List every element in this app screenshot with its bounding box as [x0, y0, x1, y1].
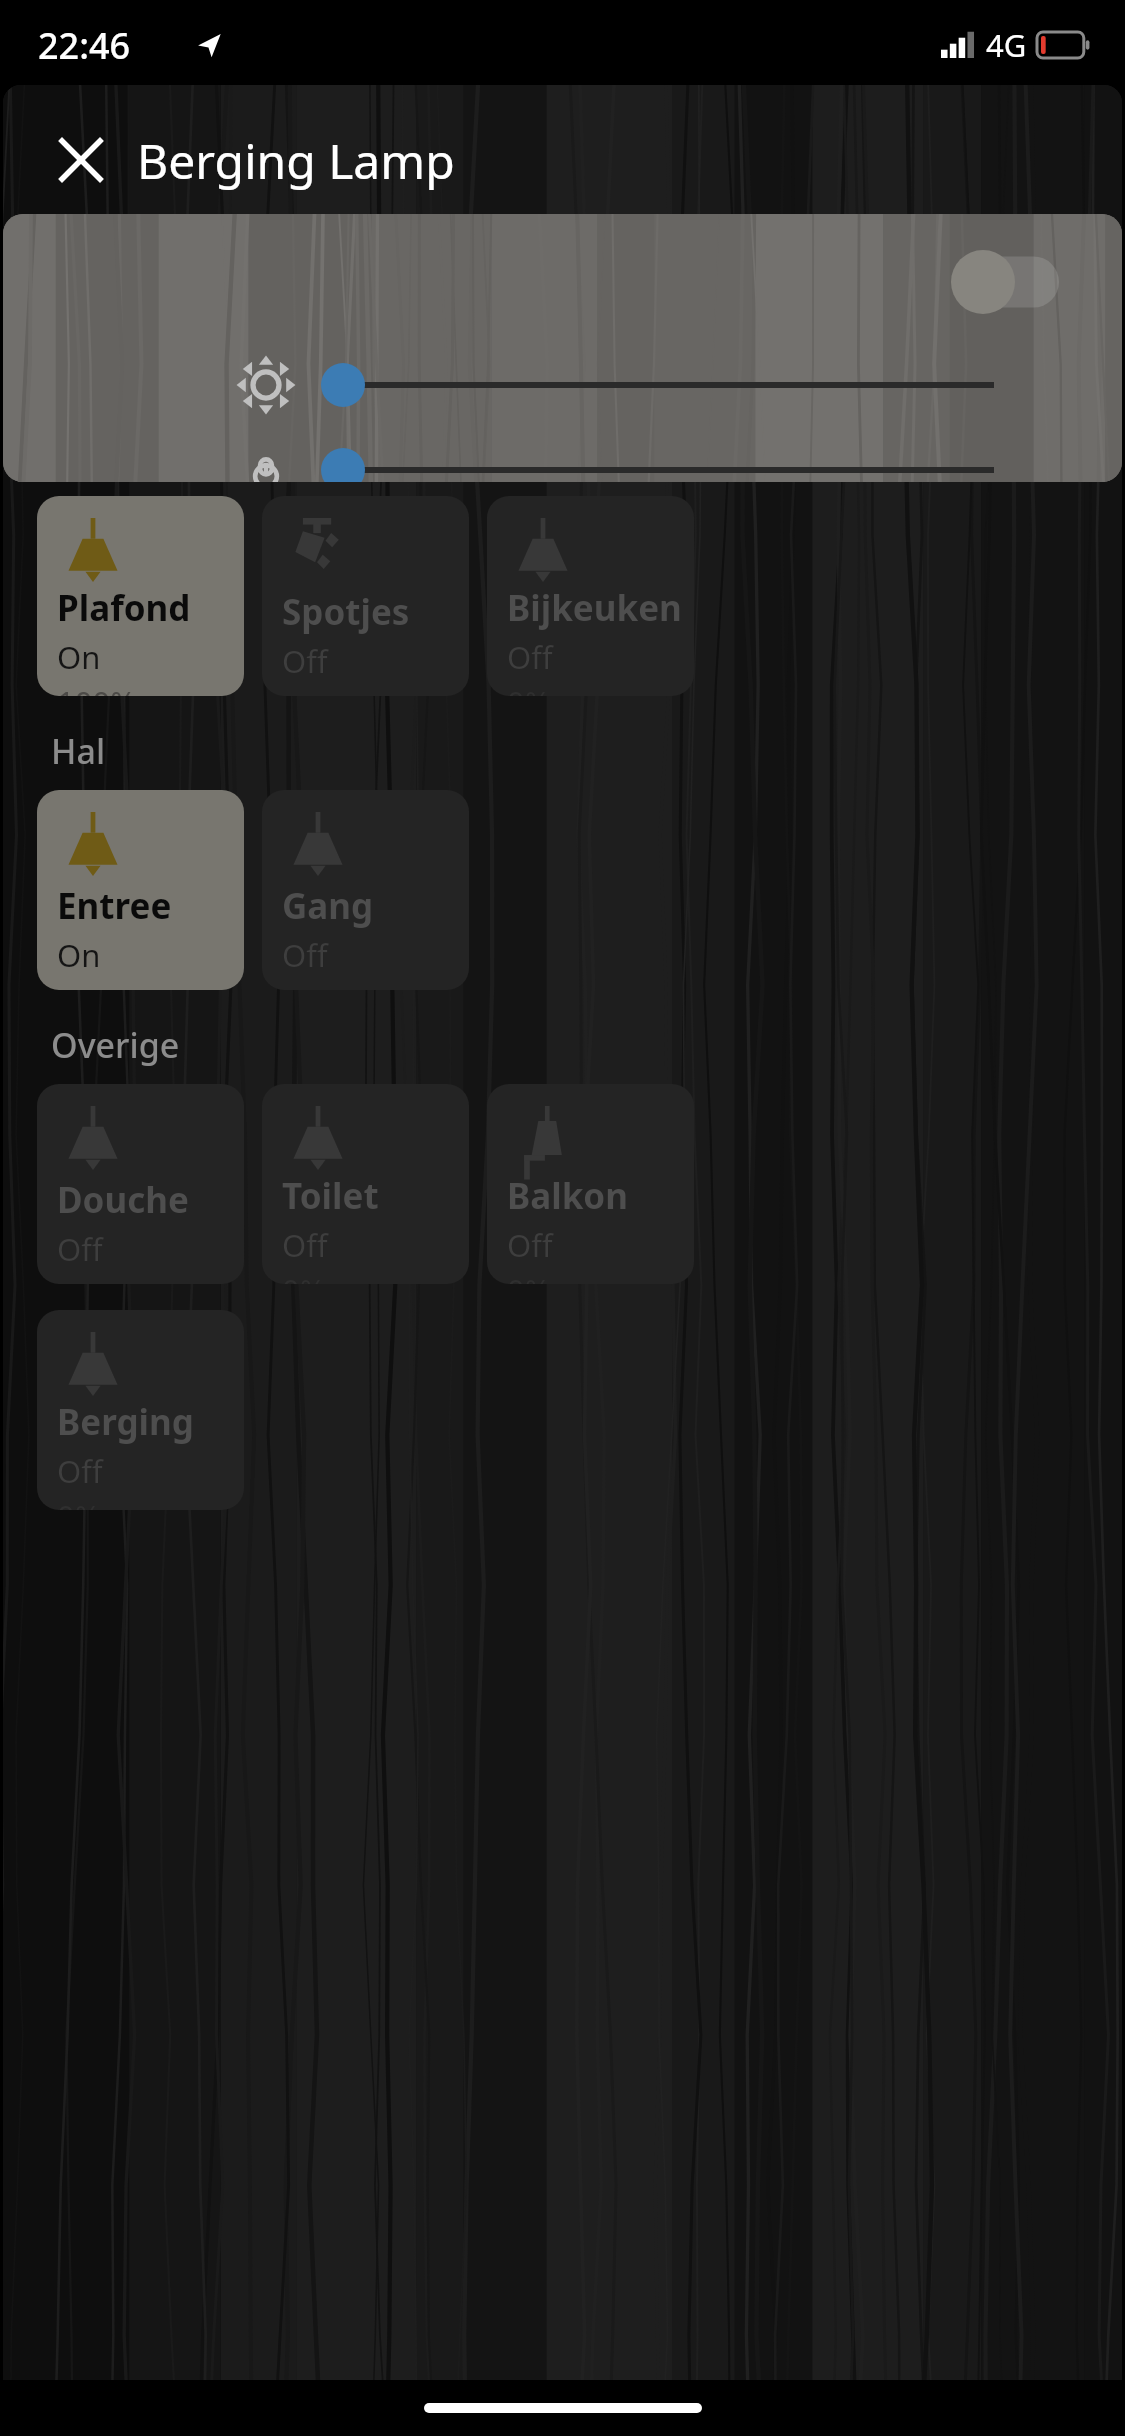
staticText: On	[57, 636, 101, 678]
button[interactable]: Spotjes	[262, 496, 469, 696]
staticText: Off	[507, 1224, 553, 1266]
staticText: Spotjes	[282, 588, 410, 636]
staticText: On	[57, 934, 101, 976]
staticText: Berging Lamp	[137, 128, 455, 193]
button[interactable]: Berging	[37, 1310, 244, 1510]
staticText: Berging	[57, 1398, 194, 1446]
staticText: Bijkeuken	[507, 584, 682, 632]
button[interactable]: Entree	[37, 790, 244, 990]
staticText: Off	[282, 1224, 328, 1266]
staticText: Off	[282, 640, 328, 682]
staticText: 100%	[57, 681, 136, 696]
button[interactable]: Close	[53, 132, 109, 188]
staticText: Hal	[51, 728, 106, 774]
staticText: Douche	[57, 1176, 189, 1224]
staticText: Plafond	[57, 584, 191, 632]
button[interactable]: Plafond	[37, 496, 244, 696]
staticText: 22:46	[38, 21, 131, 70]
button[interactable]	[319, 458, 994, 482]
button[interactable]	[319, 354, 994, 416]
staticText: Off	[507, 636, 553, 678]
button[interactable]: Douche	[37, 1084, 244, 1284]
staticText: Balkon	[507, 1172, 628, 1220]
button[interactable]: Toilet	[262, 1084, 469, 1284]
button[interactable]: Gang	[262, 790, 469, 990]
staticText: Off	[282, 934, 328, 976]
button[interactable]: Balkon	[487, 1084, 694, 1284]
staticText: Toilet	[282, 1172, 379, 1220]
button[interactable]: Bijkeuken	[487, 496, 694, 696]
staticText: Off	[57, 1228, 103, 1270]
staticText: 4G	[986, 24, 1027, 66]
button[interactable]: Power toggle	[951, 250, 1059, 314]
staticText: Entree	[57, 882, 172, 930]
staticText: Off	[57, 1450, 103, 1492]
staticText: Gang	[282, 882, 374, 930]
staticText: Overige	[51, 1022, 180, 1068]
